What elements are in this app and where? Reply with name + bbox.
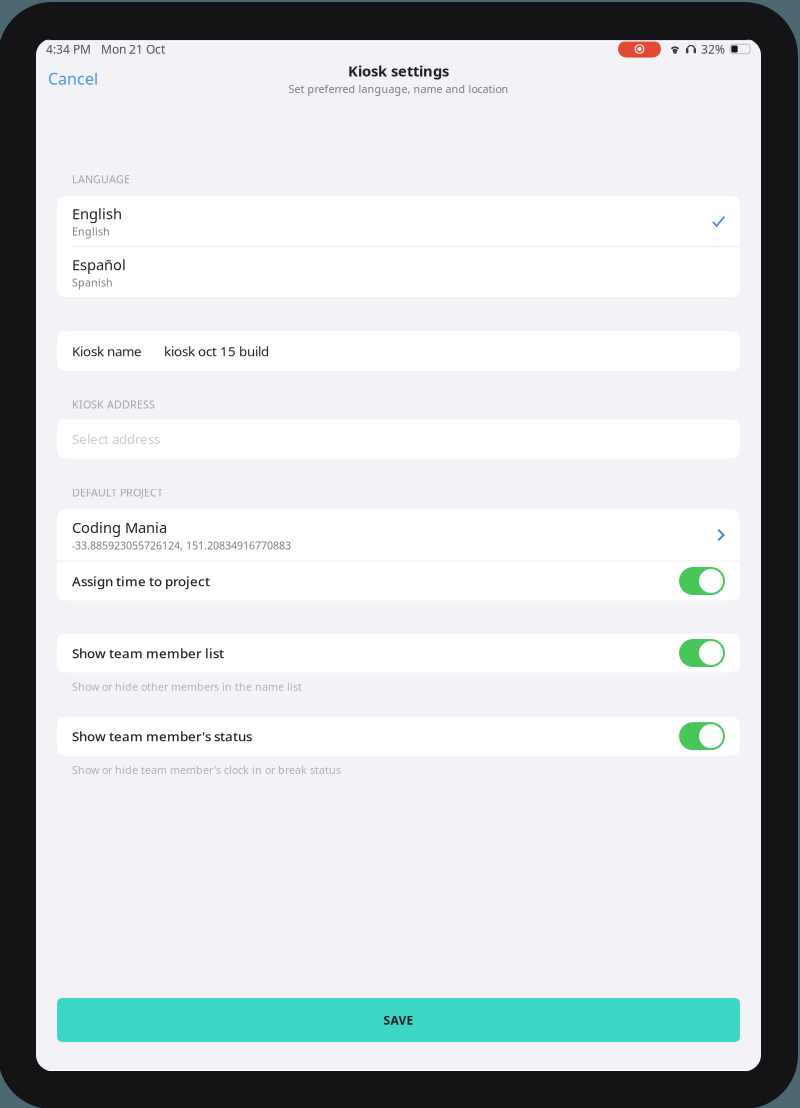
staticText: English xyxy=(72,204,122,223)
staticText: DEFAULT PROJECT xyxy=(72,485,163,499)
button[interactable]: Show team member list xyxy=(57,633,740,672)
staticText: Select address xyxy=(72,430,160,448)
staticText: Coding Mania xyxy=(72,518,167,537)
button[interactable]: SAVE xyxy=(57,998,740,1042)
staticText: Show or hide team member's clock in or b… xyxy=(72,763,341,777)
staticText: Spanish xyxy=(72,275,113,289)
staticText: Show team member's status xyxy=(72,727,252,745)
staticText: kiosk oct 15 build xyxy=(164,342,269,360)
staticText: KIOSK ADDRESS xyxy=(72,397,155,411)
button[interactable]: Select address xyxy=(57,419,740,458)
button[interactable]: English xyxy=(57,196,740,246)
staticText: Cancel xyxy=(48,68,98,89)
staticText: SAVE xyxy=(383,1012,413,1028)
staticText: 32% xyxy=(701,41,725,57)
button[interactable]: Cancel xyxy=(36,62,110,95)
staticText: Kiosk settings xyxy=(348,61,449,81)
staticText: English xyxy=(72,224,110,238)
staticText: Show or hide other members in the name l… xyxy=(72,679,302,694)
button[interactable]: Kiosk name xyxy=(57,331,740,371)
button[interactable]: Coding Mania xyxy=(57,509,740,560)
staticText: Kiosk name xyxy=(72,342,142,360)
staticText: Set preferred language, name and locatio… xyxy=(288,82,508,96)
staticText: Español xyxy=(72,255,126,274)
staticText: Show team member list xyxy=(72,644,224,662)
button[interactable]: Assign time to project xyxy=(57,561,740,600)
staticText: Mon 21 Oct xyxy=(101,41,165,57)
staticText: Assign time to project xyxy=(72,572,210,590)
staticText: LANGUAGE xyxy=(72,172,130,186)
button[interactable]: Español xyxy=(57,247,740,297)
staticText: 4:34 PM xyxy=(46,41,91,57)
button[interactable]: Show team member's status xyxy=(57,717,740,756)
staticText: -33.885923055726124, 151.20834916770883 xyxy=(72,538,291,552)
